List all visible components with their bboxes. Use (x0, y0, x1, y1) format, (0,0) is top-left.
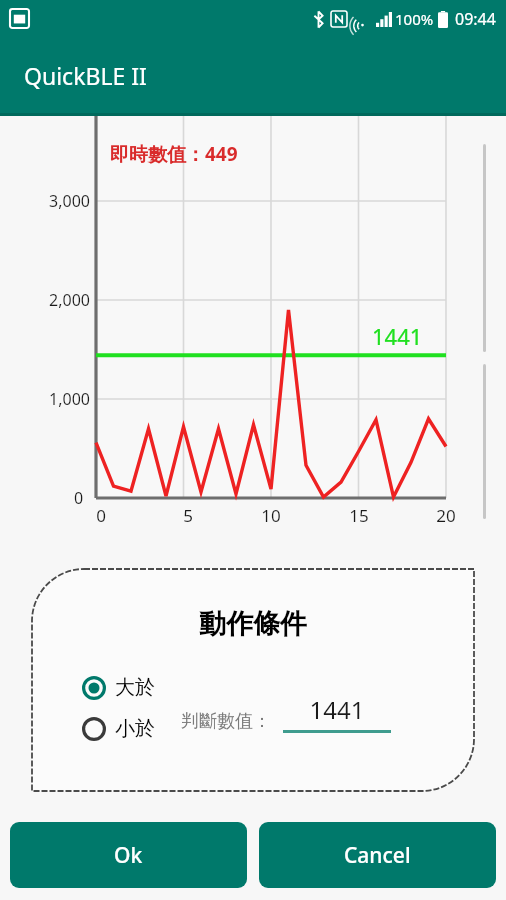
button[interactable]: 1441 (283, 693, 391, 733)
staticText: 大於 (115, 675, 155, 700)
staticText: 0 (90, 504, 112, 527)
button[interactable]: Ok (10, 822, 247, 888)
staticText: Cancel (344, 841, 411, 870)
staticText: Ok (114, 841, 143, 870)
staticText: 3,000 (38, 190, 90, 212)
staticText: 10 (260, 504, 282, 527)
button[interactable]: 大於 (82, 673, 155, 702)
staticText: 0 (74, 487, 84, 509)
staticText: 判斷數值： (181, 710, 271, 733)
staticText: 100% (395, 9, 434, 29)
staticText: 動作條件 (32, 607, 474, 641)
staticText: 即時數值：449 (110, 141, 238, 167)
staticText: QuickBLE II (24, 60, 147, 91)
button[interactable]: Cancel (259, 822, 496, 888)
staticText: 15 (348, 504, 370, 527)
staticText: 09:44 (455, 8, 496, 30)
staticText: 1441 (372, 321, 423, 351)
staticText: 5 (177, 504, 199, 527)
staticText: 1,000 (38, 388, 90, 410)
staticText: 20 (435, 504, 457, 527)
staticText: 1441 (283, 693, 391, 726)
staticText: 小於 (115, 716, 155, 741)
staticText: 2,000 (38, 289, 90, 311)
button[interactable]: 小於 (82, 714, 155, 743)
